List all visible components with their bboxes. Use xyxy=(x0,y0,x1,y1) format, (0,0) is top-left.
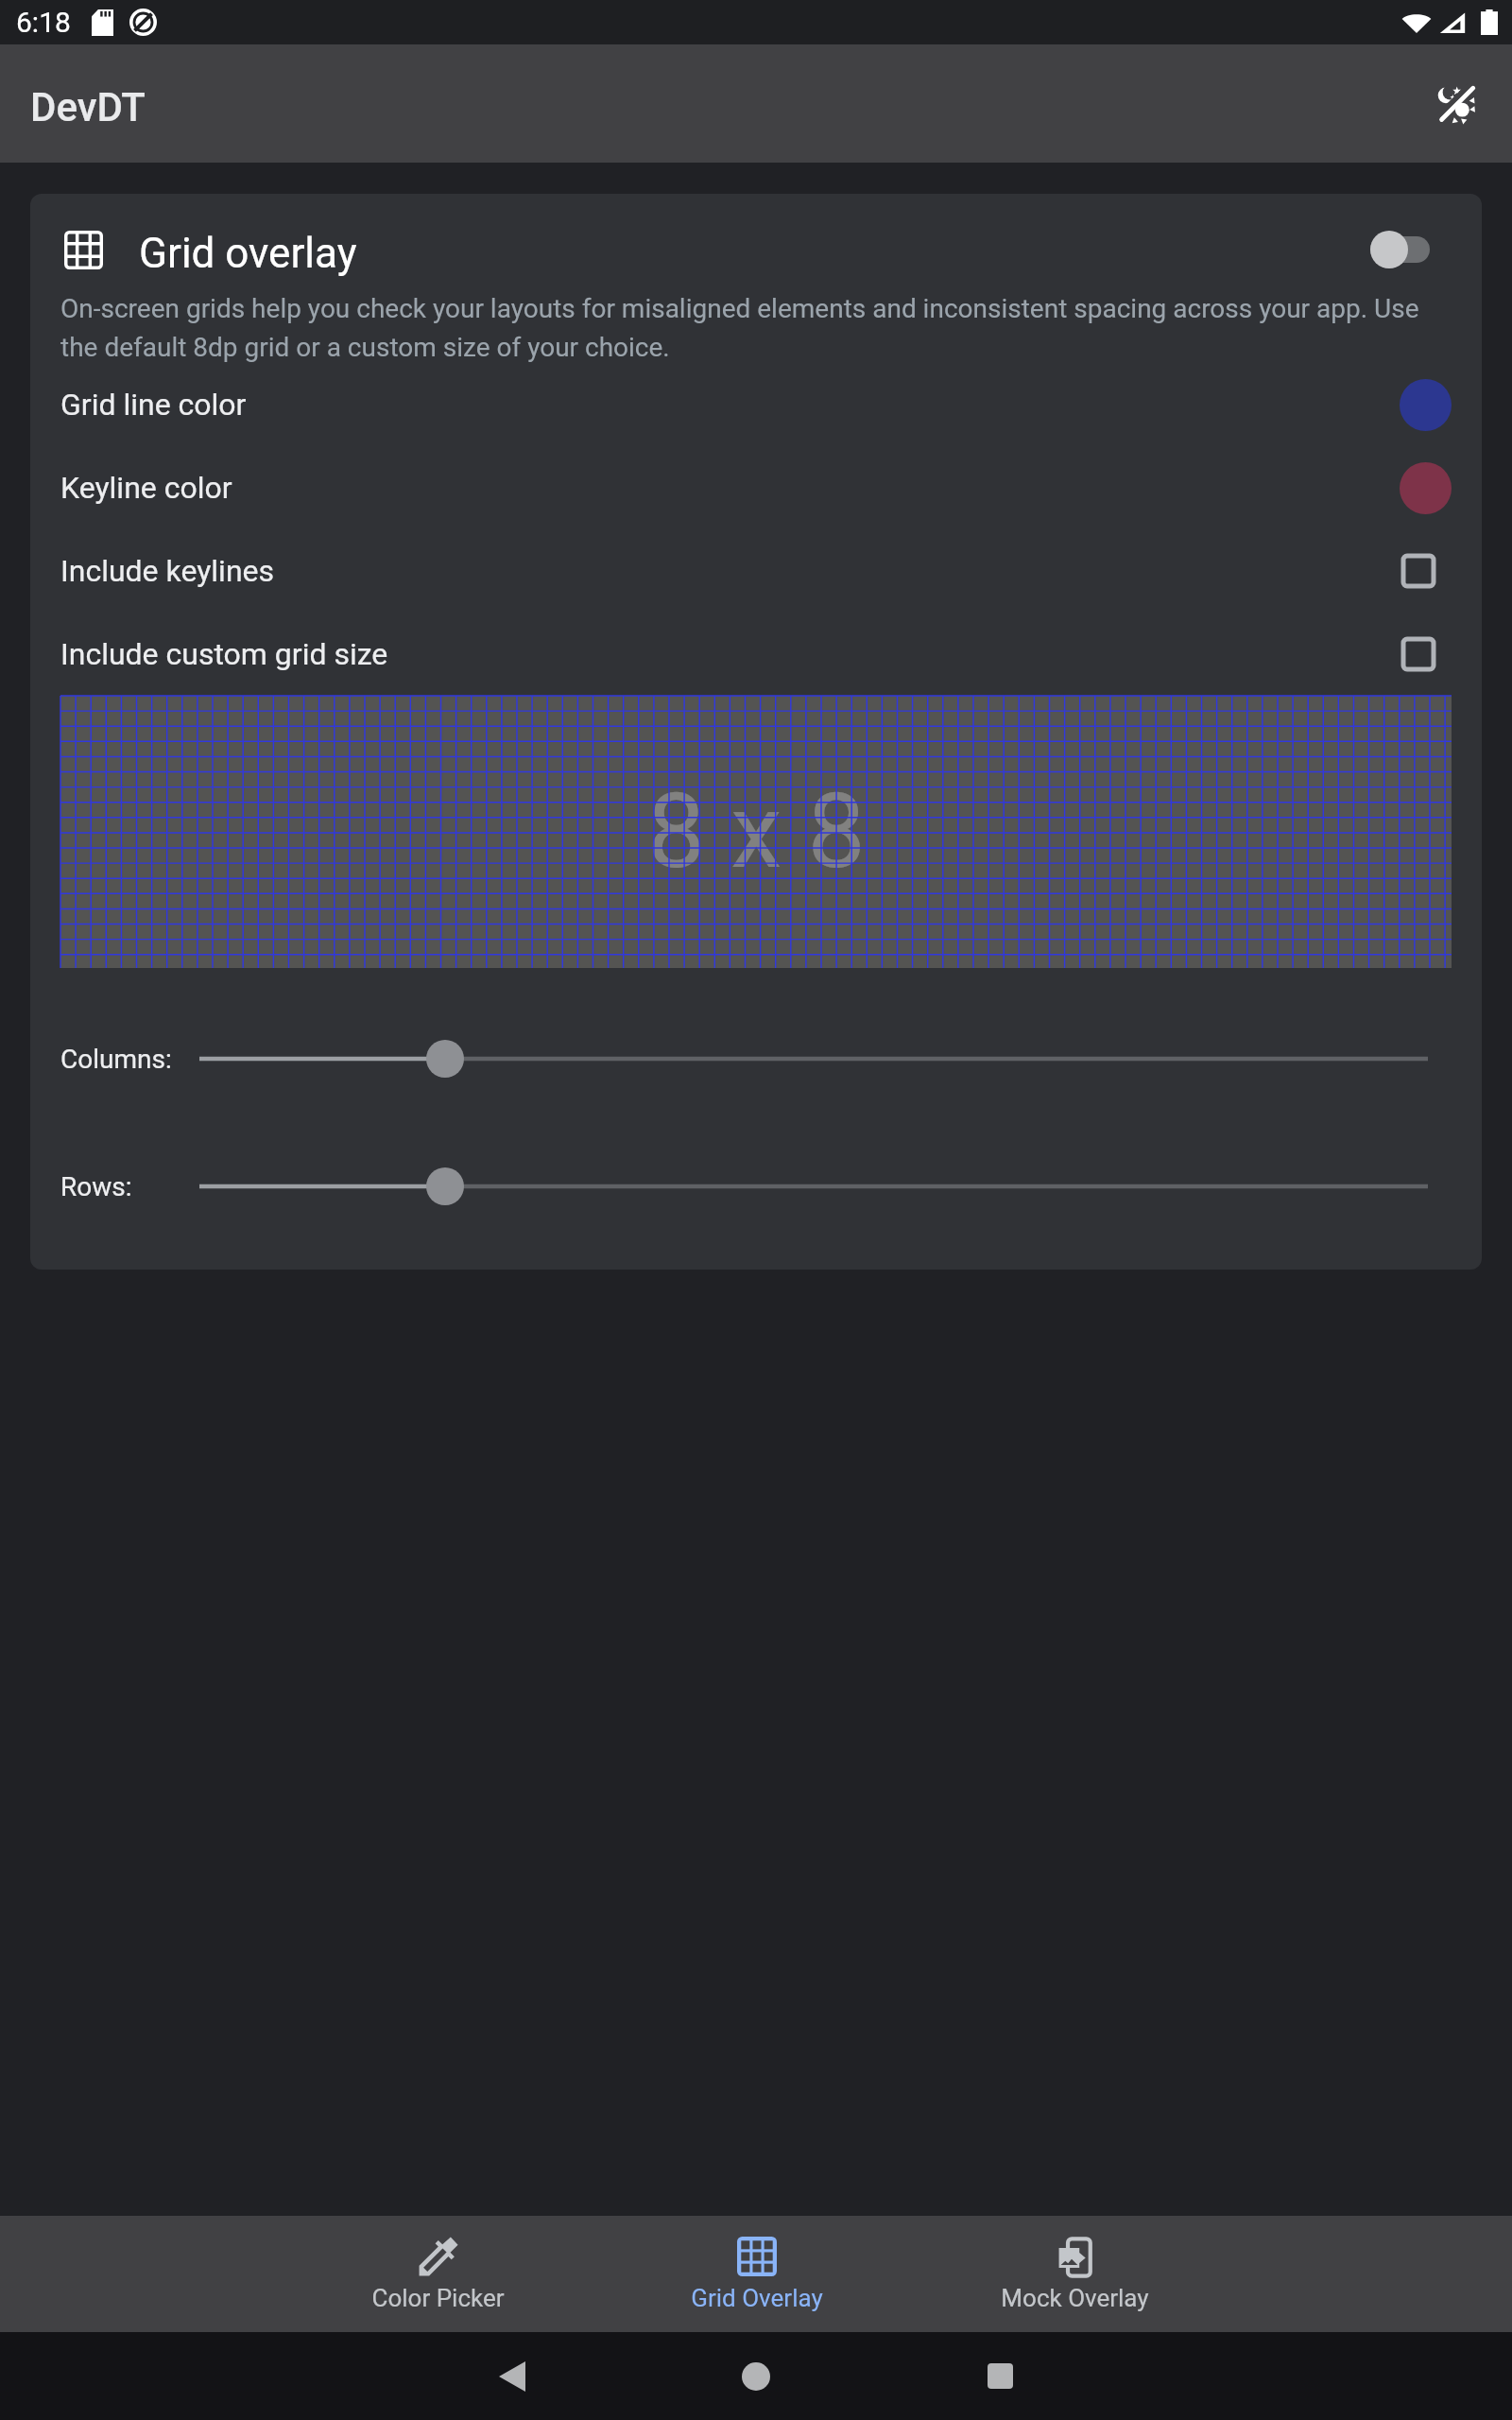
staticText: Rows: xyxy=(60,1171,132,1202)
staticText: Columns: xyxy=(60,1044,172,1075)
button[interactable]: Toggle night mode xyxy=(1420,68,1492,140)
button[interactable]: Include custom grid size xyxy=(60,613,1452,696)
button[interactable]: Grid line color xyxy=(60,363,1452,446)
staticText: Grid line color xyxy=(60,387,247,423)
button[interactable] xyxy=(199,1038,1428,1080)
button[interactable] xyxy=(199,1166,1428,1207)
staticText: Grid Overlay xyxy=(691,2284,823,2312)
button[interactable]: Home xyxy=(634,2332,878,2420)
staticText: DevDT xyxy=(30,84,146,130)
button[interactable] xyxy=(1391,544,1452,597)
button[interactable]: Color Picker xyxy=(279,2216,597,2332)
button[interactable] xyxy=(1361,223,1452,276)
staticText: Include custom grid size xyxy=(60,636,388,672)
button[interactable]: Include keylines xyxy=(60,529,1452,613)
staticText: 6:18 xyxy=(16,6,71,39)
staticText: Grid overlay xyxy=(139,229,357,278)
button[interactable] xyxy=(1391,628,1452,681)
button[interactable]: Grid Overlay xyxy=(597,2216,916,2332)
staticText: Color Picker xyxy=(371,2284,505,2312)
button[interactable]: Recents xyxy=(878,2332,1122,2420)
staticText: 8 x 8 xyxy=(647,771,866,892)
staticText: Keyline color xyxy=(60,470,232,506)
staticText: On-screen grids help you check your layo… xyxy=(60,293,1452,363)
button[interactable]: Mock Overlay xyxy=(916,2216,1234,2332)
staticText: Include keylines xyxy=(60,553,275,589)
staticText: Mock Overlay xyxy=(1001,2284,1149,2312)
button[interactable]: Back xyxy=(390,2332,634,2420)
button[interactable]: Keyline color xyxy=(60,446,1452,529)
